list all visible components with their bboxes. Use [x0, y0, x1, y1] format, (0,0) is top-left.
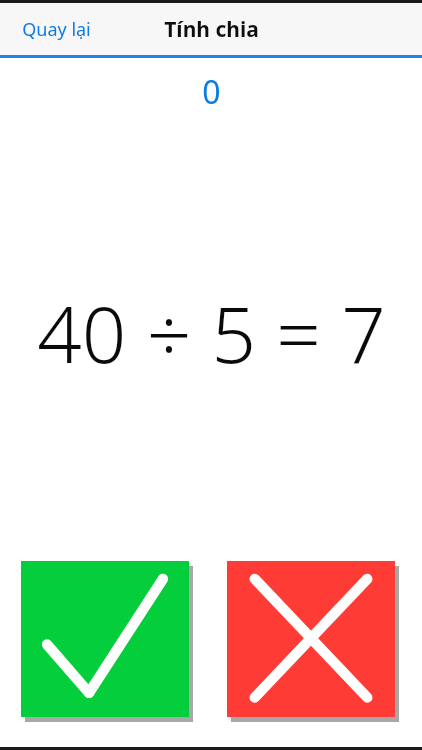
staticText: 40 ÷ 5 = 7	[37, 280, 386, 386]
button[interactable]: Wrong	[227, 561, 400, 722]
button[interactable]: Correct	[21, 561, 194, 722]
staticText: Tính chia	[164, 15, 259, 44]
button[interactable]: Quay lại	[0, 9, 105, 50]
staticText: Quay lại	[22, 17, 91, 42]
staticText: 0	[202, 70, 221, 114]
